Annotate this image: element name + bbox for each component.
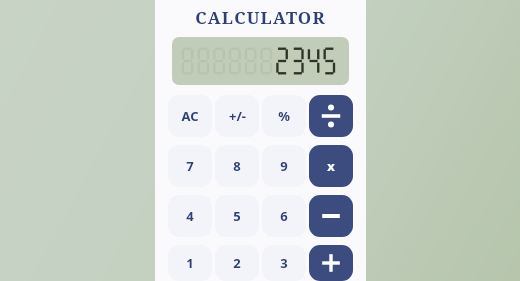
staticText: 9 — [280, 157, 288, 175]
staticText: 2 — [233, 254, 241, 272]
button[interactable]: Subtract — [309, 195, 353, 237]
staticText: 4 — [186, 207, 194, 225]
button[interactable]: 6 — [262, 195, 306, 237]
button[interactable]: 2 — [215, 245, 259, 281]
button[interactable]: 4 — [168, 195, 212, 237]
button[interactable]: 3 — [262, 245, 306, 281]
button[interactable]: AC — [168, 95, 212, 137]
button[interactable]: +/- — [215, 95, 259, 137]
button[interactable]: % — [262, 95, 306, 137]
staticText: x — [327, 157, 335, 175]
staticText: 6 — [280, 207, 288, 225]
staticText: 5 — [233, 207, 241, 225]
button[interactable]: 5 — [215, 195, 259, 237]
staticText: % — [278, 107, 290, 125]
staticText: 3 — [280, 254, 288, 272]
staticText: 7 — [186, 157, 194, 175]
button[interactable]: 7 — [168, 145, 212, 187]
button[interactable]: 1 — [168, 245, 212, 281]
staticText: AC — [181, 107, 199, 125]
staticText: +/- — [229, 107, 246, 125]
button[interactable]: Multiply — [309, 145, 353, 187]
button[interactable]: 9 — [262, 145, 306, 187]
staticText: CALCULATOR — [195, 6, 326, 29]
button[interactable]: 8 — [215, 145, 259, 187]
button[interactable]: Add — [309, 245, 353, 281]
staticText: 8 — [233, 157, 241, 175]
button[interactable]: Divide — [309, 95, 353, 137]
staticText: 1 — [186, 254, 194, 272]
